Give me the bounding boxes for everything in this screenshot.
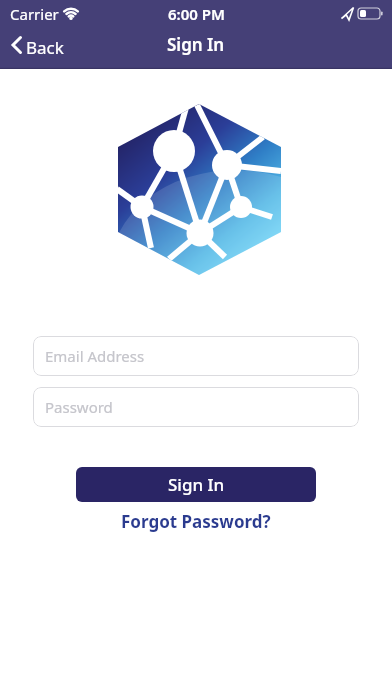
staticText: Carrier	[10, 4, 59, 24]
staticText: Forgot Password?	[121, 510, 271, 533]
button[interactable]: Email Address	[33, 336, 359, 376]
staticText: 6:00 PM	[168, 4, 225, 24]
staticText: Email Address	[45, 346, 145, 366]
button[interactable]: Sign In	[76, 467, 316, 502]
staticText: Back	[26, 36, 64, 59]
staticText: Sign In	[167, 33, 225, 56]
staticText: Password	[45, 397, 113, 417]
staticText: Sign In	[168, 473, 225, 496]
button[interactable]: Back	[8, 30, 78, 60]
button[interactable]: Forgot Password?	[121, 510, 271, 533]
button[interactable]: Password	[33, 387, 359, 427]
